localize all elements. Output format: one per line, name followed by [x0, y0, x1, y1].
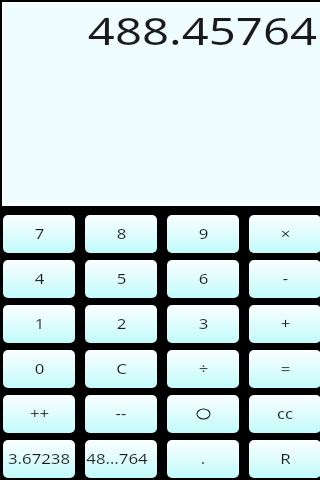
staticText: 488.45764 — [87, 4, 317, 56]
staticText: 5 — [116, 269, 127, 288]
button[interactable]: 3.67238 — [3, 440, 75, 478]
button[interactable]: × — [249, 215, 320, 253]
staticText: + — [280, 314, 291, 333]
button[interactable]: 1 — [3, 305, 75, 343]
button[interactable]: 9 — [167, 215, 239, 253]
button[interactable]: 48…764 — [85, 440, 157, 478]
button[interactable]: C — [85, 350, 157, 388]
staticText: 4 — [34, 269, 45, 288]
staticText: cc — [277, 404, 293, 423]
button[interactable]: -- — [85, 395, 157, 433]
button[interactable]: Degrees — [167, 395, 239, 433]
button[interactable]: 2 — [85, 305, 157, 343]
staticText: ++ — [29, 404, 50, 423]
button[interactable]: 3 — [167, 305, 239, 343]
button[interactable]: R — [249, 440, 320, 478]
button[interactable]: = — [249, 350, 320, 388]
staticText: ÷ — [198, 359, 209, 378]
staticText: 2 — [116, 314, 127, 333]
button[interactable]: 7 — [3, 215, 75, 253]
staticText: . — [201, 449, 205, 468]
button[interactable]: 8 — [85, 215, 157, 253]
button[interactable]: 4 — [3, 260, 75, 298]
staticText: = — [280, 359, 291, 378]
button[interactable]: cc — [249, 395, 320, 433]
button[interactable]: ++ — [3, 395, 75, 433]
button[interactable]: + — [249, 305, 320, 343]
staticText: 1 — [34, 314, 45, 333]
button[interactable]: - — [249, 260, 320, 298]
button[interactable]: 6 — [167, 260, 239, 298]
staticText: 6 — [198, 269, 209, 288]
staticText: - — [282, 269, 288, 288]
staticText: R — [280, 449, 291, 468]
button[interactable]: 0 — [3, 350, 75, 388]
staticText: 3.67238 — [8, 449, 70, 468]
button[interactable]: . — [167, 440, 239, 478]
staticText: × — [280, 224, 291, 243]
staticText: 48…764 — [86, 449, 148, 468]
staticText: 0 — [34, 359, 45, 378]
staticText: -- — [115, 404, 127, 423]
staticText: 8 — [116, 224, 127, 243]
staticText: 9 — [198, 224, 209, 243]
button[interactable]: ÷ — [167, 350, 239, 388]
button[interactable]: 5 — [85, 260, 157, 298]
staticText: C — [116, 359, 127, 378]
staticText: 3 — [198, 314, 209, 333]
staticText: 7 — [34, 224, 45, 243]
